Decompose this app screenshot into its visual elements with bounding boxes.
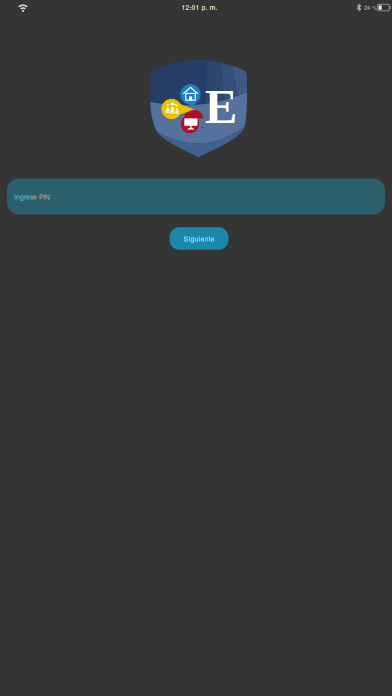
staticText: Siguiente (183, 234, 214, 243)
button[interactable]: Siguiente (169, 227, 228, 250)
staticText: Ingrese PIN (14, 192, 50, 201)
staticText: 12:01 p. m. (181, 2, 217, 12)
staticText: 24 % (364, 3, 377, 11)
staticText: E (205, 79, 238, 133)
button[interactable]: Ingrese PIN (7, 178, 385, 214)
